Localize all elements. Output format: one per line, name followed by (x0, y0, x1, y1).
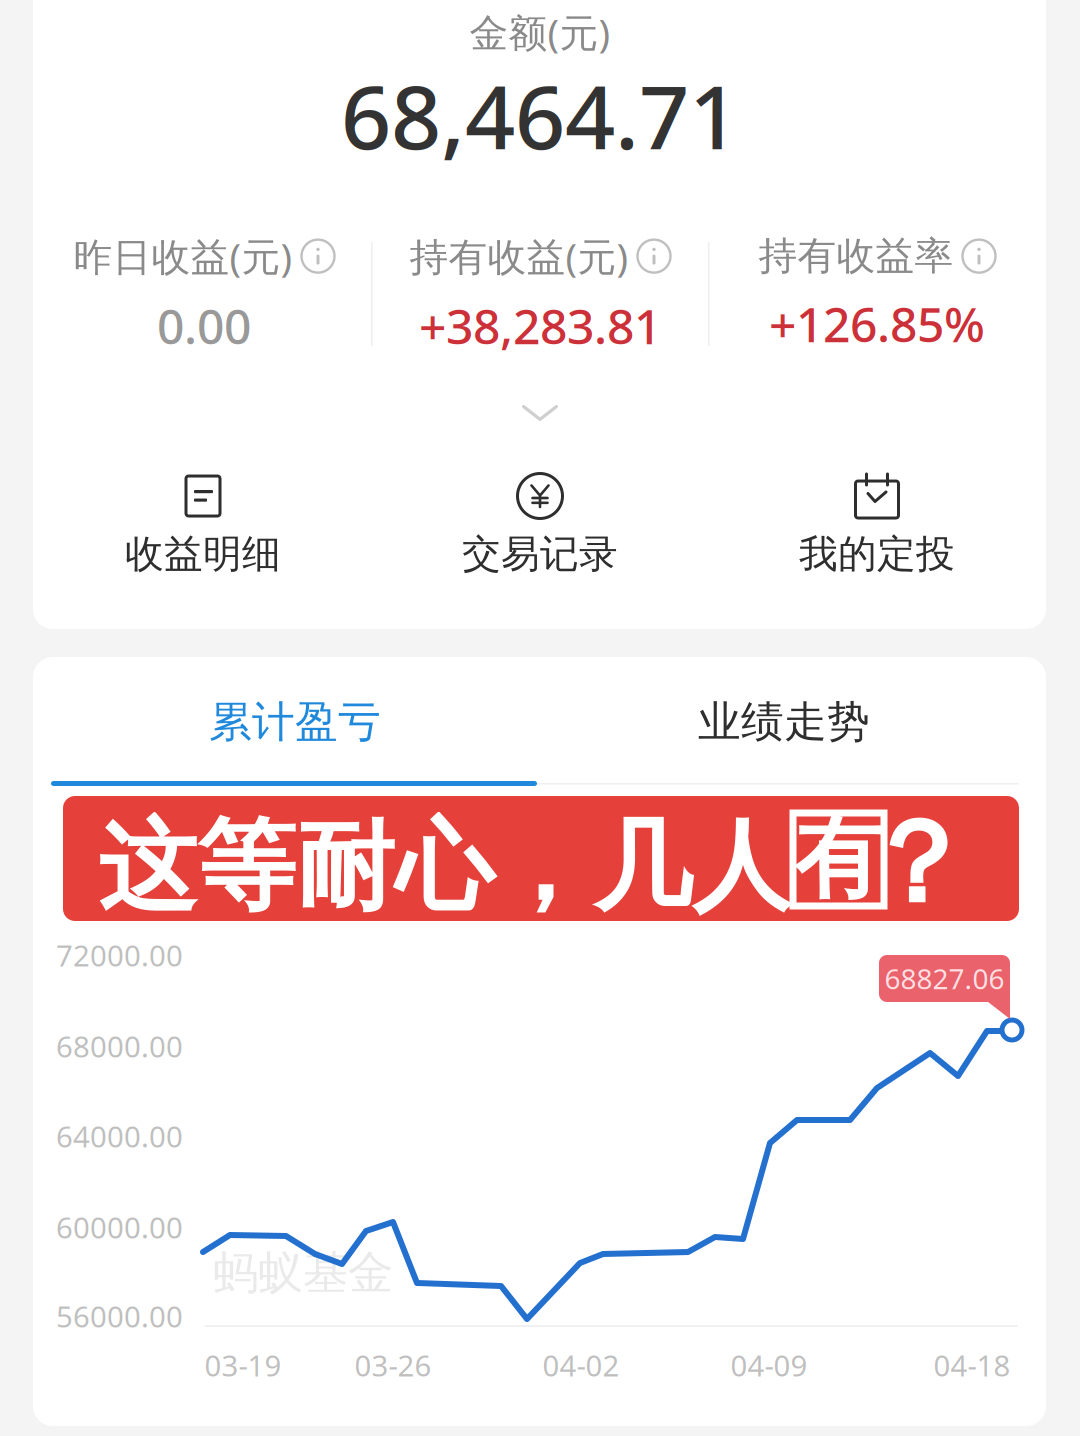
staticText: 64000.00 (56, 1116, 183, 1155)
staticText: 累计盈亏 (209, 696, 381, 748)
staticText: 我的定投 (799, 530, 955, 578)
staticText: 56000.00 (56, 1296, 183, 1335)
button[interactable]: 收益明细 (53, 450, 353, 600)
staticText: 这等耐心，几人 (98, 806, 791, 928)
staticText: 持有收益(元) (409, 230, 628, 282)
staticText: 交易记录 (462, 530, 618, 578)
staticText: 04-02 (542, 1345, 619, 1384)
button[interactable]: 交易记录 (390, 450, 690, 600)
staticText: 03-19 (204, 1345, 281, 1384)
button[interactable]: 持有收益率 (709, 238, 1045, 350)
staticText: 有 (794, 805, 882, 914)
button[interactable]: 累计盈亏 (65, 663, 525, 781)
staticText: +126.85% (769, 292, 985, 356)
staticText: 业绩走势 (698, 696, 870, 748)
staticText: 金额(元) (469, 6, 610, 58)
staticText: +38,283.81 (419, 294, 661, 357)
staticText: 03-26 (354, 1345, 431, 1384)
staticText: ？ (859, 794, 974, 934)
staticText: 68827.06 (884, 960, 1004, 997)
button[interactable]: Collapse (480, 387, 600, 439)
staticText: 收益明细 (125, 530, 281, 578)
staticText: 昨日收益(元) (73, 230, 292, 282)
button[interactable]: 业绩走势 (554, 663, 1014, 781)
staticText: 04-18 (933, 1345, 1010, 1384)
staticText: 68,464.71 (341, 57, 739, 173)
staticText: 持有收益率 (758, 232, 953, 280)
staticText: 蚂蚁基金 (213, 1245, 393, 1301)
button[interactable]: 昨日收益(元) (36, 238, 372, 350)
staticText: 04-09 (730, 1345, 807, 1384)
button[interactable]: 我的定投 (727, 450, 1027, 600)
staticText: 72000.00 (56, 935, 183, 974)
staticText: 68000.00 (56, 1026, 183, 1065)
staticText: 60000.00 (56, 1207, 183, 1246)
staticText: 0.00 (157, 294, 251, 357)
button[interactable]: 持有收益(元) (372, 238, 708, 350)
